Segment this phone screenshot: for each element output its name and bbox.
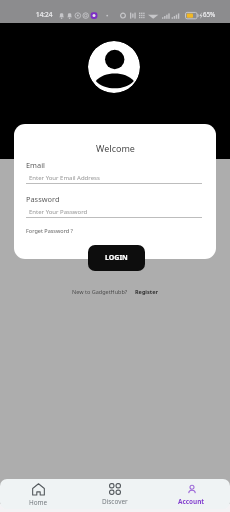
staticText: New to GadgetHubb? [72, 288, 128, 295]
staticText: Home [29, 498, 48, 507]
button[interactable]: Enter Your Password [26, 206, 202, 218]
button[interactable]: Enter Your Email Address [26, 172, 202, 184]
staticText: Email [26, 160, 45, 170]
staticText: Enter Your Email Address [29, 174, 100, 182]
staticText: Enter Your Password [29, 208, 88, 216]
staticText: 14:24 [36, 10, 53, 19]
staticText: Password [26, 194, 60, 204]
staticText: LOGIN [105, 253, 128, 263]
button[interactable]: Discover [76, 479, 153, 509]
button[interactable]: Profile picture [88, 41, 140, 93]
button[interactable]: Forget Password ? [26, 227, 73, 234]
button[interactable]: LOGIN [88, 245, 145, 271]
button[interactable]: Register [135, 288, 158, 295]
staticText: 65% [203, 10, 216, 18]
staticText: Welcome [96, 142, 135, 154]
button[interactable]: Account [153, 479, 230, 509]
button[interactable]: Home [0, 479, 76, 509]
staticText: Discover [102, 497, 128, 506]
staticText: Account [178, 497, 205, 506]
